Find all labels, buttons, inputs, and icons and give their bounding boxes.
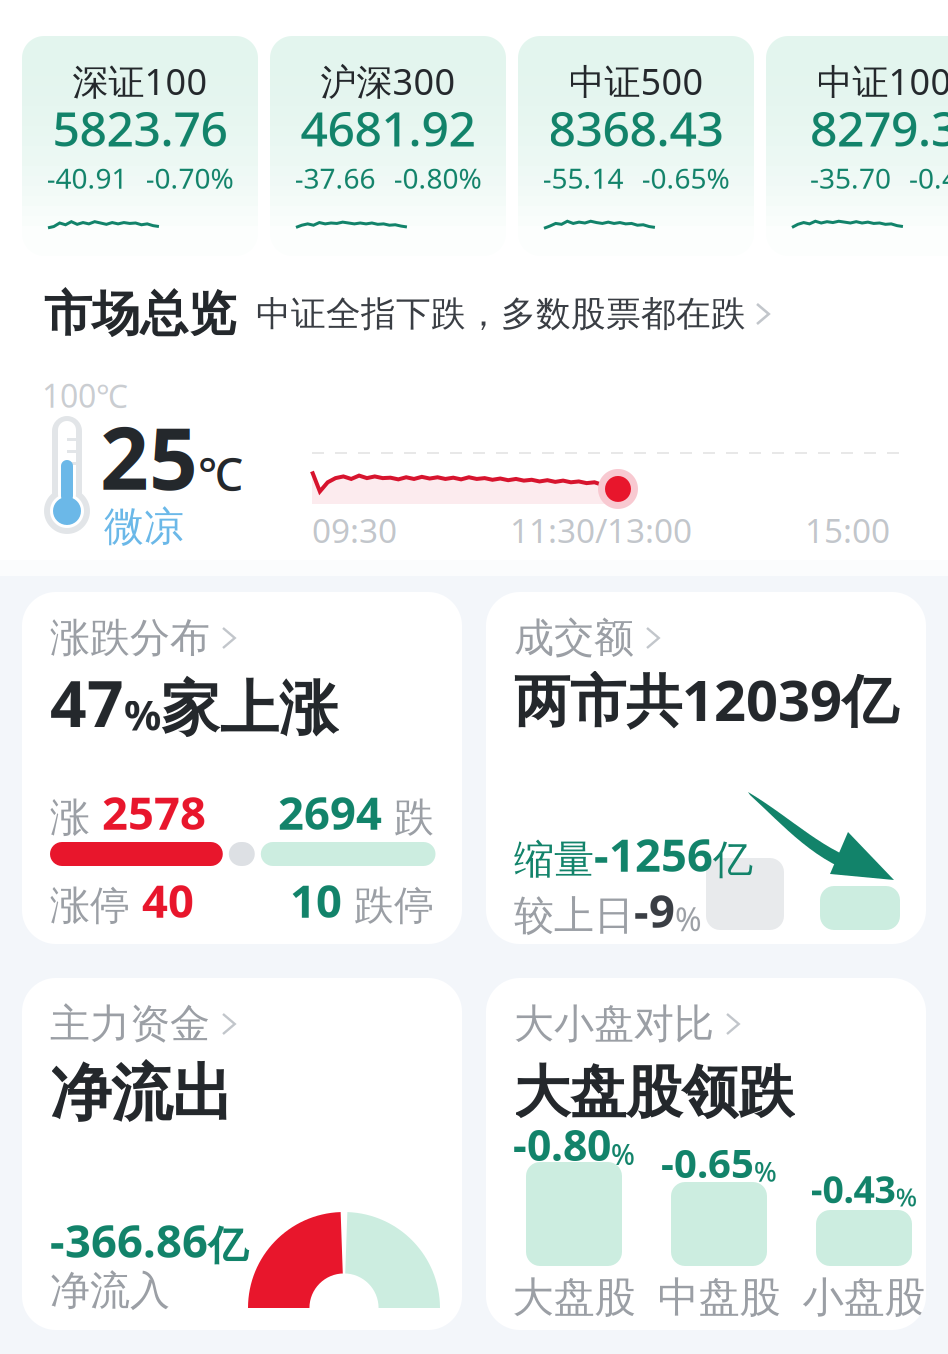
staticText: 5823.76 [52,96,227,160]
staticText: % [895,1180,917,1213]
staticText: % [675,898,702,940]
staticText: 净流入 [50,1266,170,1315]
button[interactable]: 中证100 [766,36,948,256]
staticText: -1256 [594,824,713,884]
staticText: 2578 [102,782,206,842]
staticText: 小盘股 [802,1272,925,1323]
staticText: 中证100 [816,57,948,105]
staticText: 亿 [713,835,753,884]
staticText: -0.4 [909,159,948,197]
button[interactable]: 成交额 [486,592,926,944]
staticText: 15:00 [805,508,890,552]
staticText: -366.86 [50,1210,208,1270]
staticText: -0.80% [393,159,481,197]
staticText: 100℃ [42,374,128,416]
staticText: % [611,1135,635,1173]
staticText: 深证100 [72,57,207,105]
staticText: 40 [142,870,194,930]
staticText: % [754,1154,777,1189]
staticText: 净流出 [50,1056,233,1131]
staticText: 跌 [382,793,434,842]
staticText: 11:30/13:00 [510,508,692,552]
staticText: -35.70 [810,159,891,197]
staticText: -40.91 [46,159,127,197]
staticText: 8279.3 [810,96,948,160]
staticText: 涨 [50,793,102,842]
staticText: 沪深300 [320,57,455,105]
staticText: 大盘股 [512,1272,635,1323]
staticText: -9 [634,880,675,940]
staticText: 亿 [208,1221,248,1270]
staticText: 大盘股领跌 [514,1058,794,1127]
staticText: -0.80 [513,1116,611,1173]
staticText: 亿 [842,668,898,736]
button[interactable]: 市场总览 [44,286,904,342]
staticText: 跌停 [342,881,434,930]
staticText: 47 [50,660,124,745]
staticText: -55.14 [542,159,623,197]
staticText: % [124,687,161,742]
staticText: 中证500 [568,57,703,105]
staticText: 主力资金 [50,999,210,1048]
staticText: 8368.43 [548,96,723,160]
staticText: 成交额 [514,613,634,662]
staticText: 2694 [278,782,382,842]
staticText: 涨跌分布 [50,613,210,662]
button[interactable]: 大小盘对比 [486,978,926,1330]
staticText: 两市共 [514,668,682,736]
staticText: 12039 [682,662,842,736]
staticText: 中证全指下跌，多数股票都在跌 [236,293,756,335]
staticText: 4681.92 [300,96,475,160]
staticText: -37.66 [294,159,375,197]
staticText: 缩量 [514,835,594,884]
button[interactable]: 沪深300 [270,36,506,256]
button[interactable]: 深证100 [22,36,258,256]
staticText: 涨停 [50,881,142,930]
staticText: -0.65 [661,1136,754,1189]
staticText: 家上涨 [161,673,338,745]
staticText: ℃ [198,443,243,503]
staticText: 中盘股 [657,1272,780,1323]
staticText: -0.65% [641,159,729,197]
staticText: 微凉 [104,502,184,551]
staticText: 25 [100,400,198,513]
staticText: -0.70% [145,159,233,197]
staticText: -0.43 [810,1164,895,1214]
staticText: 较上日 [514,891,634,940]
button[interactable]: 中证500 [518,36,754,256]
staticText: 大小盘对比 [514,999,714,1048]
staticText: 市场总览 [44,284,236,343]
staticText: 10 [290,870,342,930]
button[interactable]: 涨跌分布 [22,592,462,944]
staticText: 09:30 [312,508,397,552]
button[interactable]: 主力资金 [22,978,462,1330]
